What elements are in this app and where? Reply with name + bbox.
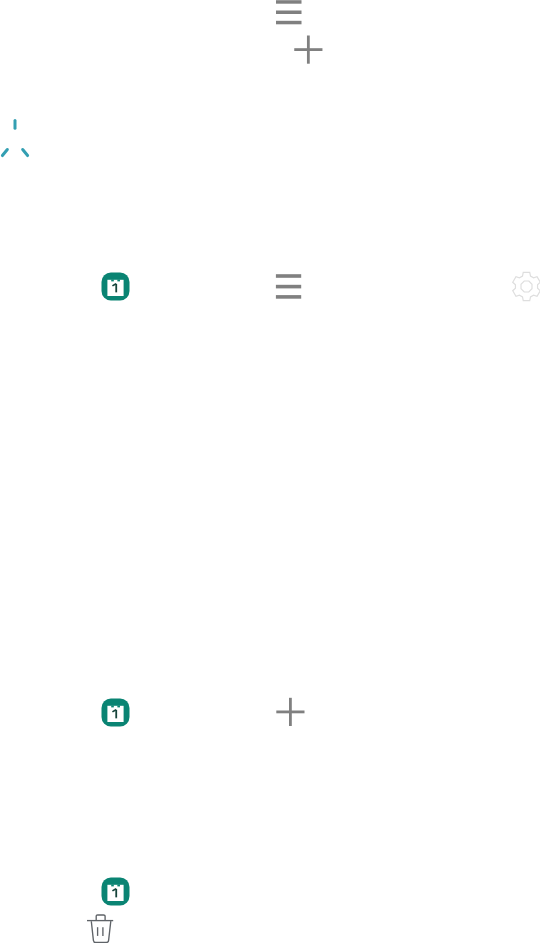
button[interactable]: Calendar, day 1 <box>97 873 134 910</box>
button[interactable]: Add <box>268 689 312 733</box>
button[interactable]: Settings <box>506 266 540 307</box>
button[interactable]: Menu <box>264 262 312 310</box>
button[interactable]: Calendar, day 1 <box>97 694 134 731</box>
button[interactable]: Menu <box>262 0 316 40</box>
button[interactable]: Delete <box>83 911 118 946</box>
button[interactable]: Add <box>286 27 330 71</box>
button[interactable]: Calendar, day 1 <box>97 268 134 305</box>
